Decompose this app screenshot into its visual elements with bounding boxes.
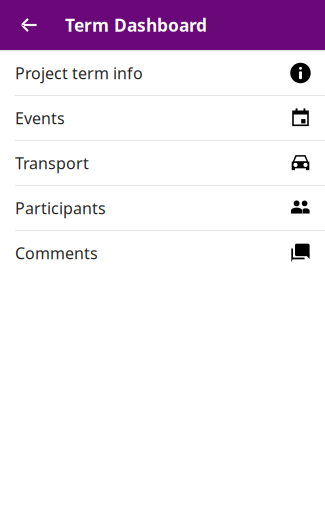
staticText: Transport [15,152,89,174]
button[interactable]: Events [0,96,325,141]
button[interactable]: Comments [0,231,325,276]
button[interactable]: Project term info [0,51,325,96]
staticText: Participants [15,197,106,219]
staticText: Events [15,107,65,129]
button[interactable]: Back [0,0,49,50]
staticText: Comments [15,242,98,264]
staticText: Project term info [15,62,143,84]
staticText: Term Dashboard [65,13,207,36]
button[interactable]: Participants [0,186,325,231]
button[interactable]: Transport [0,141,325,186]
